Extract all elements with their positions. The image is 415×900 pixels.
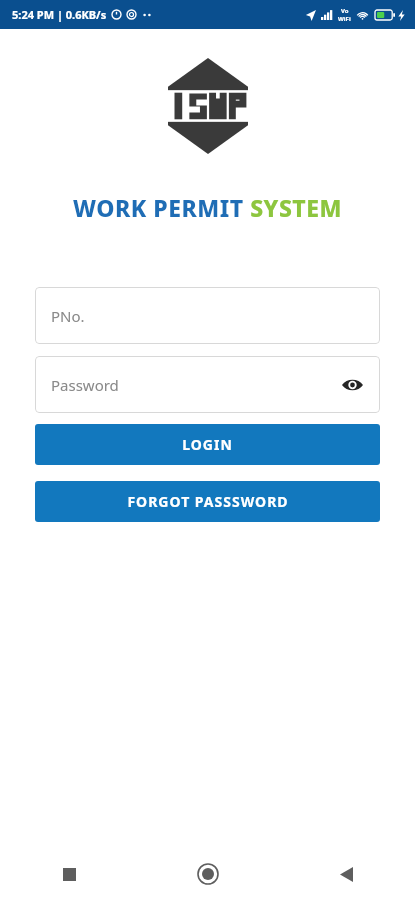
button[interactable]: Password <box>35 356 380 413</box>
staticText: PNo. <box>51 306 85 326</box>
staticText: Password <box>51 375 119 395</box>
button[interactable]: Back <box>277 848 415 900</box>
staticText: WORK PERMIT SYSTEM <box>73 192 342 223</box>
button[interactable]: PNo. <box>35 287 380 344</box>
button[interactable]: LOGIN <box>35 424 380 465</box>
button[interactable]: Home <box>139 848 277 900</box>
button[interactable]: Recent apps <box>0 848 139 900</box>
staticText: LOGIN <box>182 435 233 454</box>
staticText: WiFi <box>338 15 351 23</box>
staticText: 5:24 PM | 0.6KB/s <box>12 7 107 22</box>
button[interactable]: Show password <box>338 371 366 399</box>
staticText: FORGOT PASSSWORD <box>127 492 289 511</box>
staticText: Vo <box>341 7 349 15</box>
button[interactable]: FORGOT PASSSWORD <box>35 481 380 522</box>
